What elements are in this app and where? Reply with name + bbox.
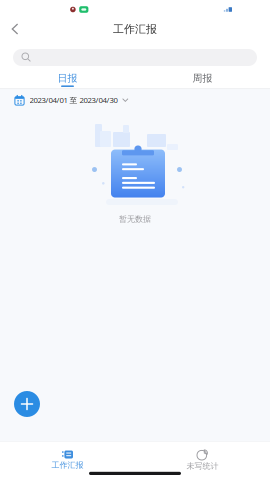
- button[interactable]: [13, 49, 257, 66]
- staticText: 工作汇报: [51, 460, 83, 470]
- staticText: 未写统计: [186, 461, 218, 471]
- button[interactable]: Back: [0, 19, 30, 39]
- button[interactable]: 日报: [0, 66, 135, 89]
- button[interactable]: Add report: [10, 387, 44, 421]
- button[interactable]: 周报: [135, 66, 270, 89]
- staticText: 暂无数据: [119, 214, 151, 224]
- button[interactable]: 工作汇报: [0, 442, 135, 470]
- staticText: 日报: [57, 72, 77, 84]
- staticText: 2023/04/01 至 2023/04/30: [29, 95, 117, 105]
- staticText: 工作汇报: [113, 22, 157, 36]
- button[interactable]: 未写统计: [135, 441, 270, 471]
- button[interactable]: 2023/04/01 至 2023/04/30: [0, 89, 270, 111]
- staticText: 周报: [192, 72, 212, 84]
